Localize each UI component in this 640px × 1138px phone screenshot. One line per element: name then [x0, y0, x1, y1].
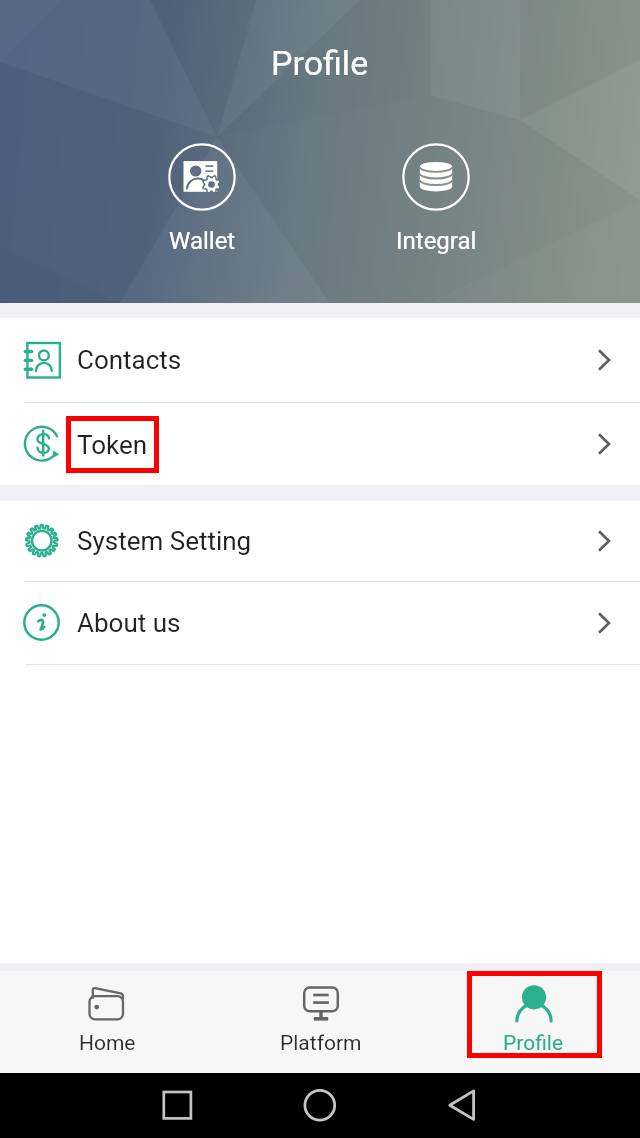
- button[interactable]: Home: [0, 971, 214, 1073]
- button[interactable]: Integral: [376, 143, 496, 255]
- staticText: Contacts: [77, 345, 182, 375]
- staticText: Token: [77, 430, 148, 460]
- button[interactable]: About us: [0, 582, 640, 664]
- staticText: About us: [77, 608, 181, 638]
- staticText: Profile: [503, 1031, 564, 1056]
- button[interactable]: Token: [0, 403, 640, 485]
- staticText: Home: [79, 1031, 136, 1056]
- staticText: Wallet: [169, 227, 236, 255]
- button[interactable]: Platform: [214, 971, 427, 1073]
- staticText: Platform: [280, 1031, 362, 1056]
- button[interactable]: Contacts: [0, 318, 640, 402]
- button[interactable]: Wallet: [142, 143, 262, 255]
- staticText: Integral: [396, 227, 477, 255]
- staticText: System Setting: [77, 526, 252, 556]
- button[interactable]: System Setting: [0, 501, 640, 581]
- button[interactable]: Profile: [427, 971, 640, 1073]
- staticText: Profile: [271, 43, 369, 83]
